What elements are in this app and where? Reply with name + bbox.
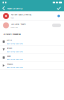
staticText: Building options: [7, 66, 23, 69]
button[interactable]: Done: [57, 5, 64, 11]
staticText: Milk: [7, 38, 12, 41]
staticText: Team Sharing: [7, 7, 23, 10]
button[interactable]: Milk: [0, 38, 64, 46]
staticText: Building options: [7, 42, 23, 45]
button[interactable]: Bread: [0, 46, 64, 54]
staticText: We Local Team: [11, 22, 26, 25]
button[interactable]: Follow back (invite): [0, 11, 64, 20]
staticText: Tap: [11, 16, 14, 19]
staticText: Follow back (invite): [11, 13, 32, 16]
button[interactable]: Cheese: [0, 62, 64, 70]
button[interactable]: Back: [0, 5, 7, 11]
button[interactable]: We Local Team: [0, 21, 64, 30]
staticText: Sharing: [11, 26, 18, 28]
button[interactable]: Eggs: [0, 54, 64, 62]
staticText: Bread: [7, 46, 12, 49]
staticText: Grocery Shopping: [3, 32, 20, 35]
staticText: Building options: [7, 50, 23, 53]
staticText: Eggs: [7, 54, 11, 57]
staticText: Cheese: [7, 62, 13, 65]
staticText: Building options: [7, 58, 23, 61]
